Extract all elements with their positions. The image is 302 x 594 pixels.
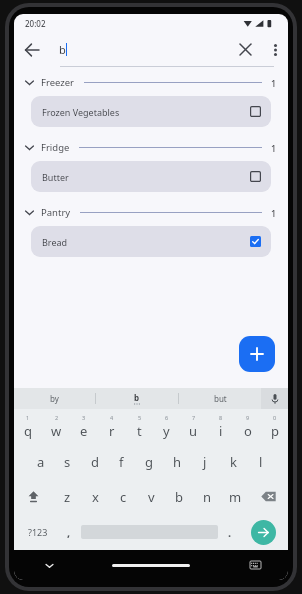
staticText: c <box>120 488 127 506</box>
button[interactable]: Back <box>14 33 50 66</box>
staticText: l <box>259 453 263 471</box>
staticText: 20:02 <box>25 18 46 29</box>
staticText: 1 <box>271 207 277 219</box>
button[interactable]: Enter <box>251 520 276 545</box>
button[interactable]: h <box>163 444 191 479</box>
button[interactable]: z <box>53 479 81 514</box>
button[interactable]: 5 <box>126 409 153 444</box>
button[interactable]: m <box>221 479 249 514</box>
button[interactable]: k <box>219 444 247 479</box>
button[interactable]: 1 <box>14 409 42 444</box>
button[interactable]: 6 <box>153 409 180 444</box>
button[interactable]: Switch keyboard <box>244 554 266 576</box>
staticText: h <box>173 453 182 471</box>
staticText: q <box>24 422 32 440</box>
button[interactable]: Comma <box>57 514 81 550</box>
staticText: b <box>175 488 183 506</box>
staticText: b <box>59 42 66 57</box>
button[interactable]: v <box>137 479 165 514</box>
button[interactable]: a <box>27 444 54 479</box>
button[interactable]: by <box>14 388 95 409</box>
staticText: , <box>67 525 71 540</box>
button[interactable]: 4 <box>98 409 126 444</box>
staticText: x <box>92 488 99 506</box>
staticText: Fridge <box>41 141 70 154</box>
button[interactable]: Shift <box>14 479 53 514</box>
staticText: 5 <box>138 414 142 421</box>
button[interactable]: Backspace <box>249 479 288 514</box>
button[interactable]: Pantry <box>14 199 288 226</box>
staticText: 9 <box>246 414 250 421</box>
staticText: Frozen Vegetables <box>42 106 120 118</box>
button[interactable]: Bread <box>31 226 271 257</box>
staticText: m <box>229 488 242 506</box>
button[interactable]: ?123 <box>18 514 57 550</box>
staticText: v <box>148 488 155 506</box>
staticText: 3 <box>82 414 86 421</box>
staticText: ?123 <box>28 526 48 538</box>
staticText: Freezer <box>41 76 75 89</box>
staticText: n <box>203 488 212 506</box>
staticText: 7 <box>192 414 196 421</box>
button[interactable]: Add item <box>239 336 275 372</box>
button[interactable]: 7 <box>180 409 207 444</box>
staticText: t <box>137 422 142 440</box>
button[interactable]: Home <box>112 564 190 567</box>
button[interactable]: 2 <box>42 409 70 444</box>
staticText: i <box>219 422 223 440</box>
button[interactable]: d <box>81 444 108 479</box>
staticText: f <box>119 453 124 471</box>
button[interactable]: f <box>108 444 135 479</box>
button[interactable]: 9 <box>234 409 261 444</box>
staticText: 0 <box>273 414 277 421</box>
staticText: 8 <box>219 414 223 421</box>
staticText: k <box>230 453 237 471</box>
staticText: o <box>244 422 252 440</box>
button[interactable]: Frozen Vegetables <box>31 96 271 127</box>
staticText: b <box>134 392 140 403</box>
staticText: a <box>37 453 45 471</box>
button[interactable]: Voice input <box>261 388 288 409</box>
button[interactable]: Period <box>218 514 242 550</box>
staticText: u <box>189 422 198 440</box>
staticText: s <box>64 453 71 471</box>
button[interactable]: g <box>135 444 163 479</box>
button[interactable]: n <box>193 479 221 514</box>
staticText: Bread <box>42 236 68 248</box>
button[interactable]: x <box>81 479 109 514</box>
button[interactable]: b <box>96 388 178 409</box>
button[interactable]: 3 <box>70 409 98 444</box>
button[interactable]: 0 <box>261 409 288 444</box>
staticText: Pantry <box>41 206 71 219</box>
staticText: e <box>80 422 88 440</box>
button[interactable]: but <box>179 388 261 409</box>
button[interactable]: Hide keyboard <box>38 554 60 576</box>
staticText: . <box>228 525 232 540</box>
button[interactable]: l <box>247 444 275 479</box>
staticText: but <box>214 393 227 404</box>
button[interactable]: Freezer <box>14 69 288 96</box>
staticText: 2 <box>55 414 59 421</box>
staticText: 4 <box>110 414 114 421</box>
button[interactable]: Fridge <box>14 134 288 161</box>
button[interactable]: Butter <box>31 161 271 192</box>
staticText: by <box>50 393 59 404</box>
staticText: z <box>64 488 71 506</box>
staticText: 6 <box>165 414 169 421</box>
staticText: r <box>109 422 115 440</box>
staticText: 1 <box>26 414 30 421</box>
button[interactable]: s <box>54 444 81 479</box>
button[interactable]: 8 <box>207 409 234 444</box>
staticText: Butter <box>42 171 69 183</box>
staticText: y <box>163 422 170 440</box>
staticText: j <box>203 453 207 471</box>
button[interactable]: c <box>109 479 137 514</box>
button[interactable]: b <box>165 479 193 514</box>
staticText: d <box>91 453 99 471</box>
staticText: p <box>271 422 279 440</box>
button[interactable]: j <box>191 444 219 479</box>
button[interactable]: More options <box>262 37 288 63</box>
staticText: w <box>51 422 62 440</box>
button[interactable]: Clear search <box>228 33 262 66</box>
